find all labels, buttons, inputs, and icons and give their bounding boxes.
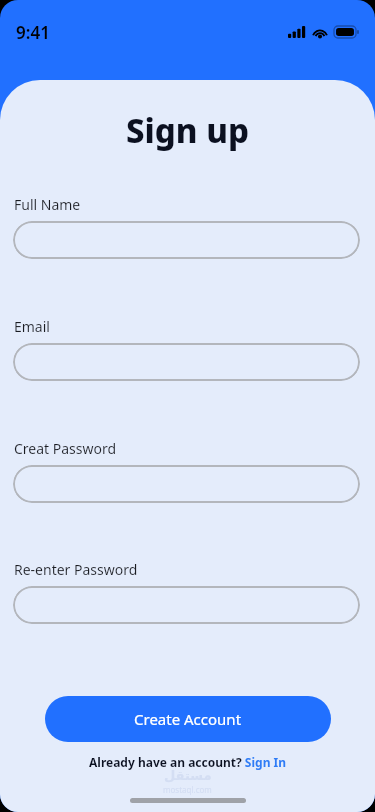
staticText: Create Account bbox=[134, 709, 242, 729]
button[interactable] bbox=[13, 343, 360, 381]
staticText: Already have an account? Sign In bbox=[89, 754, 287, 770]
button[interactable] bbox=[13, 465, 360, 503]
staticText: Full Name bbox=[14, 195, 81, 214]
staticText: Email bbox=[14, 317, 50, 336]
button[interactable] bbox=[13, 221, 360, 259]
staticText: 9:41 bbox=[16, 21, 50, 44]
button[interactable]: Create Account bbox=[45, 696, 331, 742]
staticText: Re-enter Password bbox=[14, 560, 138, 579]
button[interactable]: Already have an account? Sign In bbox=[89, 754, 287, 770]
staticText: مستقل bbox=[164, 768, 212, 783]
staticText: Creat Password bbox=[14, 439, 117, 458]
staticText: Sign up bbox=[126, 108, 249, 153]
button[interactable] bbox=[13, 586, 360, 624]
staticText: mostaql.com bbox=[163, 784, 212, 795]
